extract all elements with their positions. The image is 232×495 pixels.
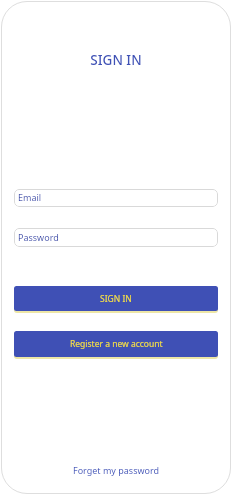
button[interactable]: Email [14,189,218,207]
button[interactable]: SIGN IN [14,286,218,311]
staticText: Register a new account [70,338,163,350]
staticText: Forget my password [73,464,160,476]
staticText: Email [18,191,42,203]
staticText: SIGN IN [100,293,132,305]
button[interactable]: Forget my password [73,464,160,476]
button[interactable]: Register a new account [14,331,218,357]
staticText: Password [18,231,59,243]
button[interactable]: Password [14,228,218,247]
staticText: SIGN IN [90,51,142,69]
